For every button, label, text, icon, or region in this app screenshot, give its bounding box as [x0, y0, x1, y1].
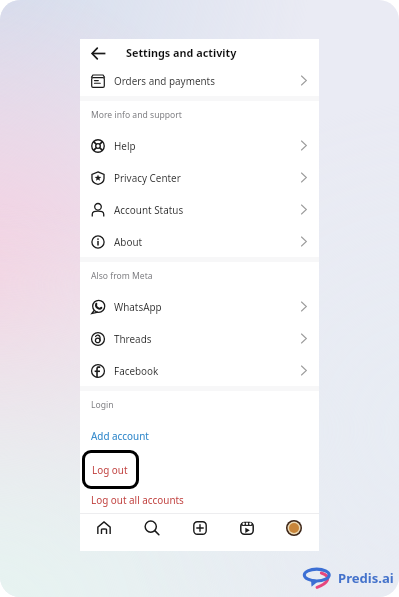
- button[interactable]: Create: [189, 517, 211, 539]
- button[interactable]: Orders and payments: [80, 64, 319, 96]
- staticText: Account Status: [114, 203, 184, 216]
- staticText: Login: [91, 399, 114, 411]
- staticText: Add account: [91, 429, 149, 442]
- button[interactable]: Help: [80, 129, 319, 161]
- button[interactable]: Home: [93, 517, 115, 539]
- button[interactable]: Facebook: [80, 354, 319, 386]
- staticText: Orders and payments: [114, 74, 215, 87]
- button[interactable]: Back: [88, 43, 109, 64]
- staticText: Help: [114, 139, 136, 152]
- button[interactable]: Reels: [236, 517, 258, 539]
- staticText: Facebook: [114, 364, 159, 377]
- button[interactable]: Search: [141, 517, 163, 539]
- staticText: Log out: [92, 463, 128, 476]
- staticText: About: [114, 235, 143, 248]
- button[interactable]: Account Status: [80, 193, 319, 225]
- button[interactable]: Log out: [82, 450, 139, 489]
- button[interactable]: About: [80, 225, 319, 257]
- button[interactable]: Profile: [283, 517, 305, 539]
- button[interactable]: WhatsApp: [80, 290, 319, 322]
- button[interactable]: Log out all accounts: [80, 483, 319, 515]
- staticText: WhatsApp: [114, 300, 162, 313]
- button[interactable]: Add account: [80, 419, 319, 451]
- staticText: Predis.ai: [338, 569, 394, 587]
- button[interactable]: Threads: [80, 322, 319, 354]
- staticText: Log out all accounts: [91, 493, 184, 506]
- staticText: Threads: [114, 332, 152, 345]
- button[interactable]: Privacy Center: [80, 161, 319, 193]
- staticText: Also from Meta: [91, 270, 153, 282]
- staticText: Privacy Center: [114, 171, 181, 184]
- staticText: More info and support: [91, 109, 182, 121]
- staticText: Settings and activity: [126, 45, 237, 60]
